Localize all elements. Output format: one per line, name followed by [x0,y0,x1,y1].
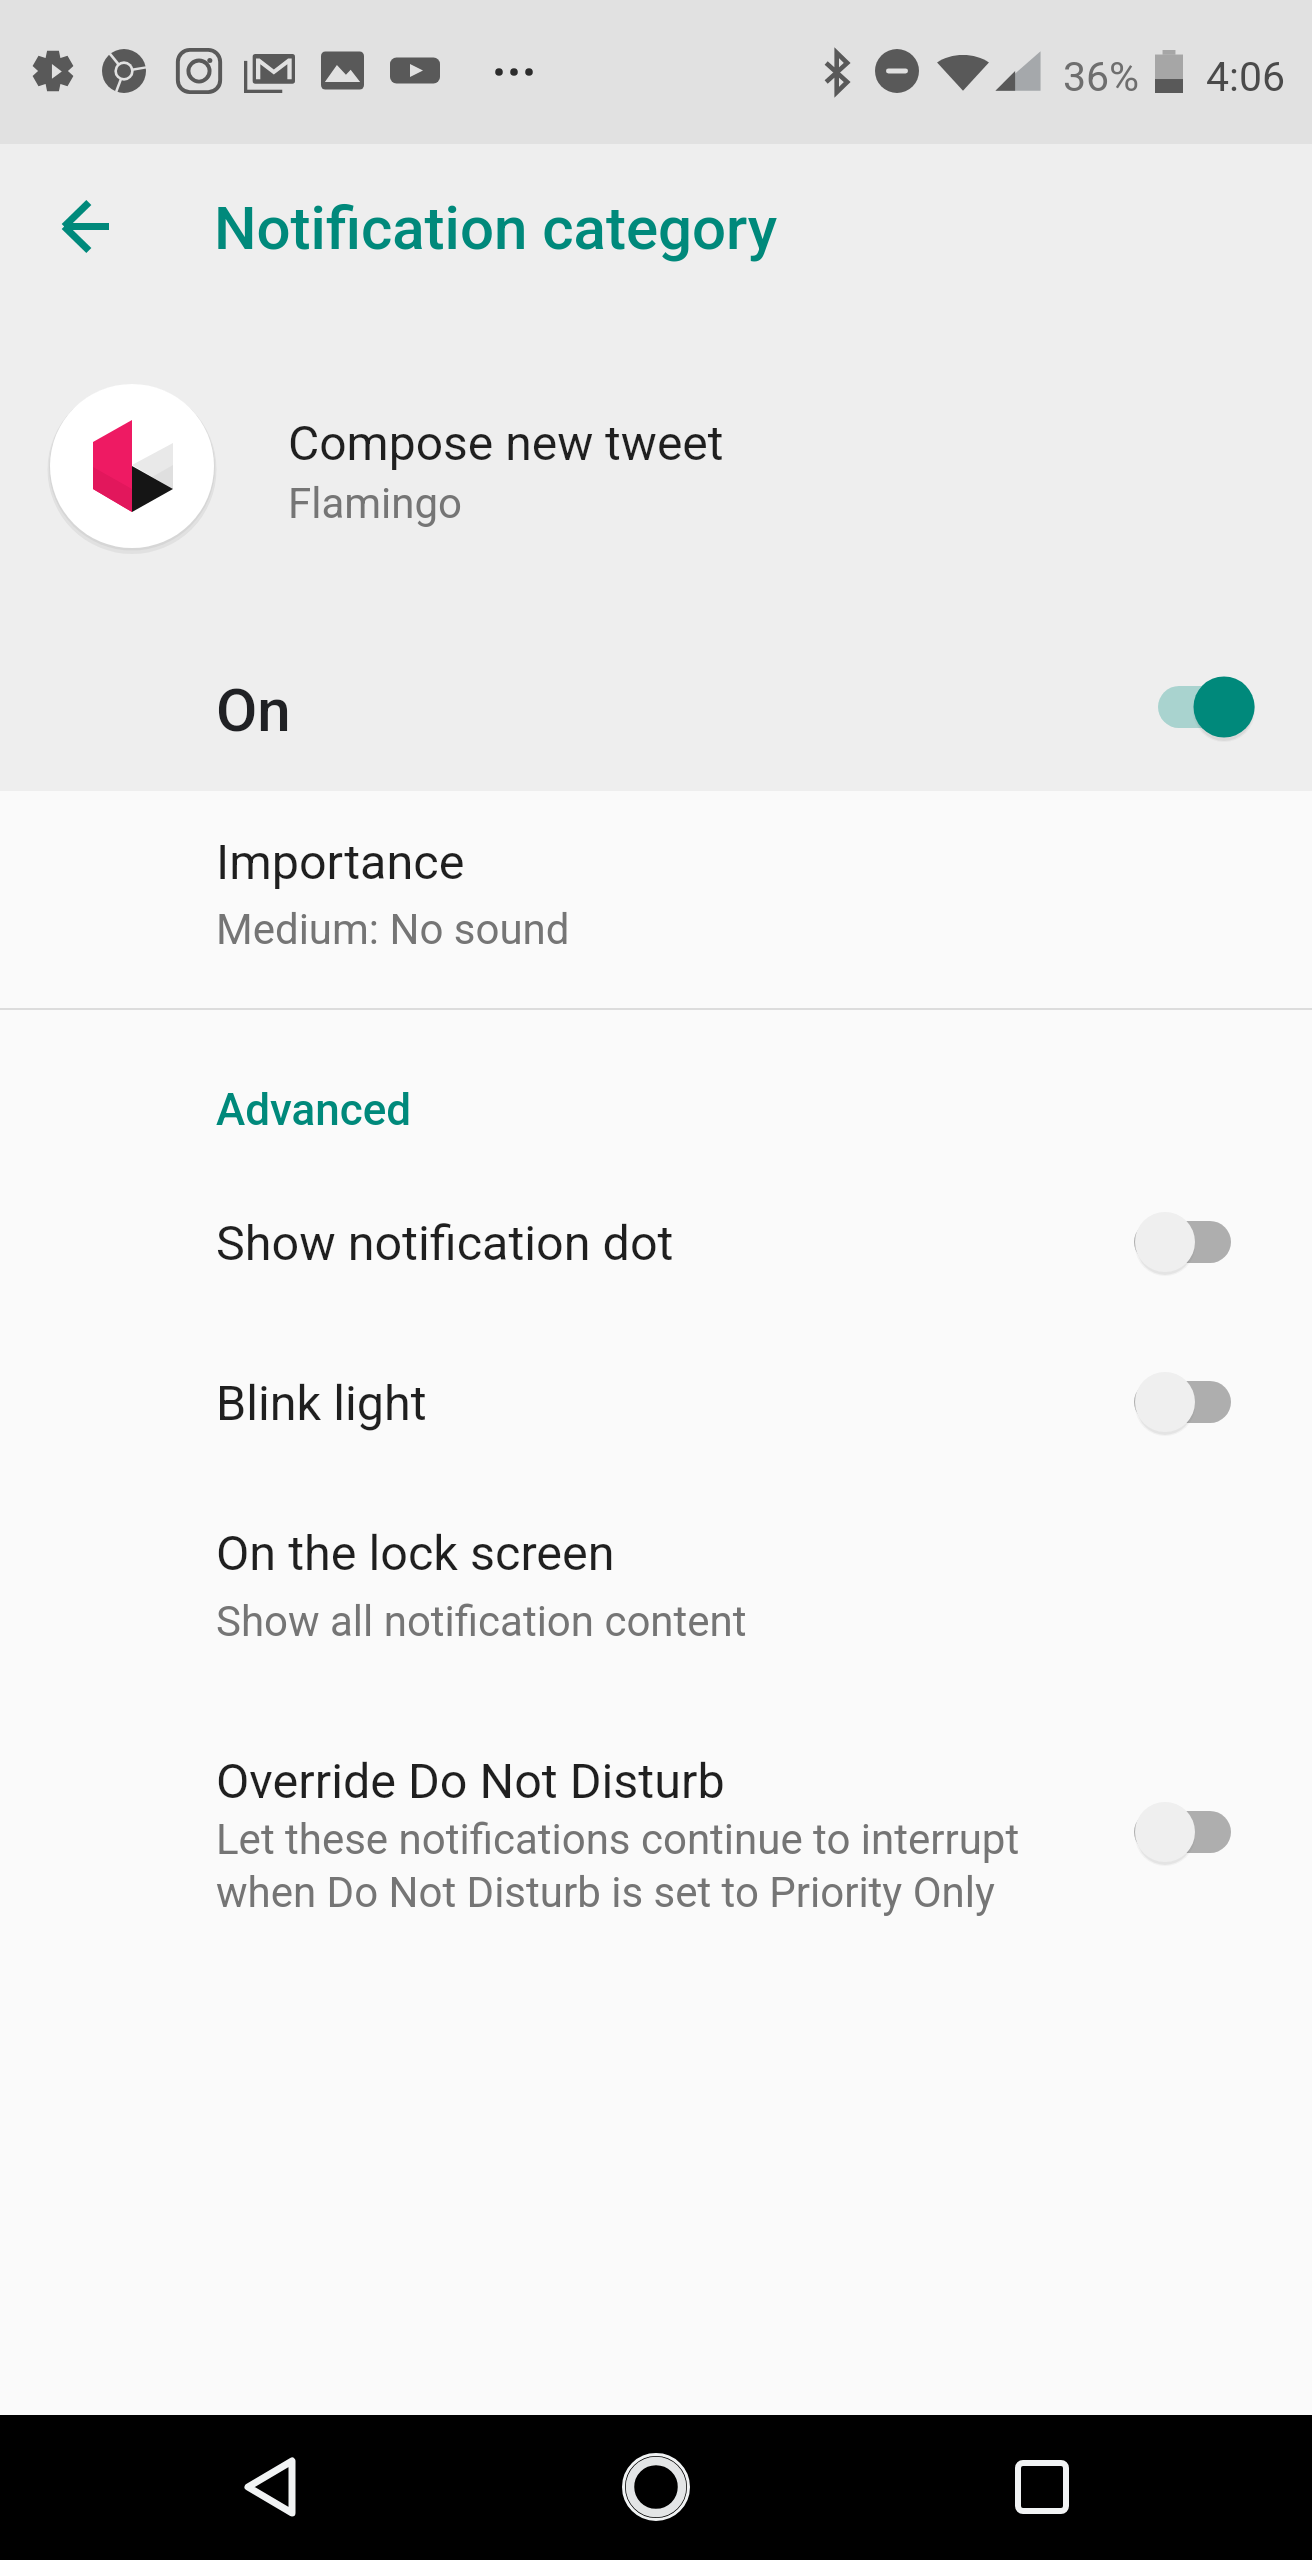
staticText: Blink light [216,1375,427,1432]
staticText: Compose new tweet [288,415,724,471]
button[interactable]: Home [596,2427,716,2547]
button[interactable]: On [0,625,1312,791]
button[interactable]: Blink light [0,1320,1312,1475]
button[interactable]: Compose new tweet [0,350,1312,580]
button[interactable]: Back [210,2427,330,2547]
button[interactable]: Turn on [1118,1786,1248,1878]
staticText: 36% [1063,53,1140,101]
button[interactable]: Importance [0,800,1312,1007]
button[interactable]: Navigate up [34,178,130,274]
staticText: Flamingo [288,479,463,528]
button[interactable]: Turn off [1142,661,1272,753]
button[interactable]: Turn on [1118,1196,1248,1288]
staticText: Show notification dot [216,1215,674,1272]
staticText: Advanced [216,1084,412,1136]
staticText: On [216,675,291,745]
staticText: On the lock screen [216,1525,615,1582]
staticText: 4:06 [1206,53,1286,101]
staticText: Let these notifications continue to inte… [216,1815,1020,1917]
button[interactable]: Recent apps [982,2427,1102,2547]
staticText: Medium: No sound [216,905,570,954]
staticText: Override Do Not Disturb [216,1753,725,1810]
button[interactable]: On the lock screen [0,1475,1312,1692]
button[interactable]: Override Do Not Disturb [0,1692,1312,1952]
button[interactable]: Show notification dot [0,1165,1312,1320]
button[interactable]: Turn on [1118,1356,1248,1448]
staticText: Show all notification content [216,1597,747,1646]
staticText: Importance [216,834,465,891]
staticText: Notification category [214,193,778,263]
